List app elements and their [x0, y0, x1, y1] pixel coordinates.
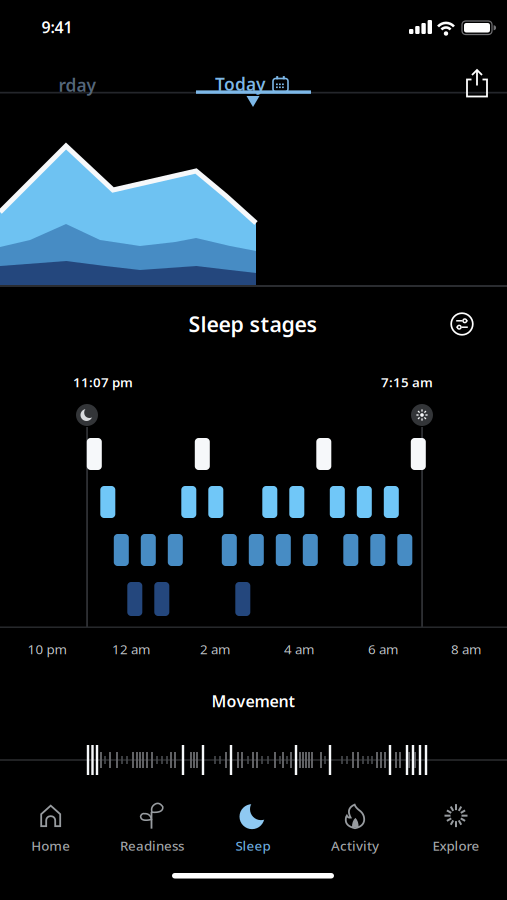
staticText: Sleep stages	[188, 310, 317, 338]
staticText: Movement	[211, 690, 294, 712]
staticText: 11:07 pm	[73, 373, 133, 391]
staticText: Explore	[432, 837, 479, 854]
button[interactable]: rday	[32, 68, 122, 102]
staticText: 9:41	[41, 16, 72, 38]
staticText: rday	[58, 73, 95, 96]
staticText: Today	[215, 72, 265, 95]
staticText: 6 am	[368, 640, 398, 658]
staticText: 10 pm	[27, 640, 66, 658]
staticText: Home	[31, 837, 70, 854]
staticText: 4 am	[284, 640, 314, 658]
button[interactable]: Sleep	[205, 800, 301, 856]
staticText: Readiness	[120, 837, 184, 854]
staticText: Sleep	[235, 837, 270, 854]
button[interactable]	[442, 304, 482, 344]
button[interactable]: Home	[3, 800, 99, 856]
button[interactable]: Readiness	[104, 800, 200, 856]
staticText: 12 am	[112, 640, 150, 658]
staticText: Activity	[331, 837, 379, 854]
staticText: 7:15 am	[381, 373, 433, 391]
staticText: 8 am	[451, 640, 481, 658]
button[interactable]: Today	[192, 67, 312, 101]
button[interactable]: Activity	[307, 800, 403, 856]
staticText: 2 am	[200, 640, 230, 658]
button[interactable]	[455, 63, 499, 103]
button[interactable]: Explore	[408, 800, 504, 856]
